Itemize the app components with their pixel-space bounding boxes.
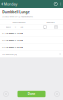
button[interactable]: #3 bbox=[0, 12, 63, 54]
button[interactable]: All Results (3) bbox=[0, 54, 63, 94]
button[interactable]: #2 bbox=[0, 0, 63, 12]
